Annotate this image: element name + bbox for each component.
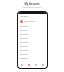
button[interactable]: Tab 1 [26,62,32,68]
staticText: Settings [20,41,28,44]
button[interactable]: Jane Cooper [18,18,47,24]
staticText: Settings [20,57,28,60]
button[interactable]: Settings [18,36,47,40]
button[interactable]: Settings [18,32,47,36]
staticText: Account [20,15,28,18]
staticText: Manage your details [22,6,42,9]
button[interactable]: Settings [18,56,47,60]
button[interactable]: Tab 0 [19,62,25,68]
button[interactable]: Settings [18,28,47,32]
staticText: Settings [20,37,28,40]
button[interactable]: Tab 3 [40,62,46,68]
button[interactable]: Settings [18,48,47,52]
staticText: Jane Cooper [24,20,36,23]
staticText: Settings [20,25,28,28]
staticText: Settings [20,53,28,56]
button[interactable]: Settings [18,24,47,28]
button[interactable]: Settings [18,52,47,56]
staticText: Settings [20,33,28,36]
button[interactable]: Tab 2 [33,62,39,68]
staticText: Settings [20,29,28,32]
button[interactable]: Settings [18,44,47,48]
button[interactable]: Settings [18,40,47,44]
staticText: Settings [20,49,28,52]
staticText: Settings [20,45,28,48]
staticText: My Account [24,2,40,6]
